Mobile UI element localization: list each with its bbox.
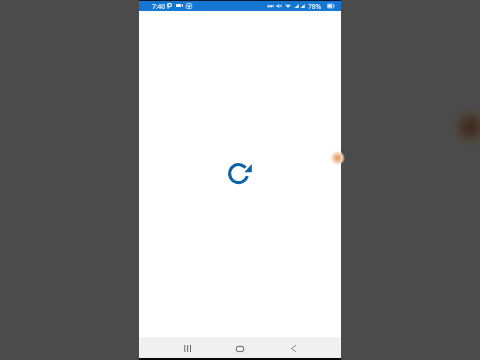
button[interactable]: Refresh	[228, 163, 254, 185]
button[interactable]: Home	[223, 340, 257, 357]
button[interactable]: Back	[276, 340, 310, 357]
staticText: 78%	[308, 2, 322, 11]
staticText: 7:40	[152, 2, 166, 11]
button[interactable]: Recent apps	[170, 340, 204, 357]
